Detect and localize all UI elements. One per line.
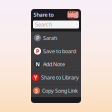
staticText: Add Note — [43, 61, 65, 68]
staticText: S — [35, 87, 38, 94]
staticText: P — [36, 34, 39, 41]
button[interactable]: Search — [33, 20, 79, 28]
button[interactable]: S — [31, 84, 81, 97]
button[interactable]: Done — [67, 11, 78, 18]
button[interactable]: P — [31, 45, 81, 57]
staticText: Search — [35, 21, 52, 28]
staticText: P — [36, 48, 39, 55]
staticText: Y — [34, 74, 37, 81]
staticText: Sarah — [43, 34, 57, 41]
staticText: Share to Library — [41, 74, 79, 81]
button[interactable]: N — [31, 58, 81, 71]
staticText: Share to — [33, 11, 53, 18]
staticText: Save to board — [43, 48, 76, 55]
staticText: N — [35, 61, 39, 68]
staticText: Copy Song Link — [42, 87, 78, 94]
staticText: Done — [68, 8, 77, 22]
button[interactable]: P — [31, 31, 81, 44]
button[interactable]: Y — [31, 71, 81, 84]
